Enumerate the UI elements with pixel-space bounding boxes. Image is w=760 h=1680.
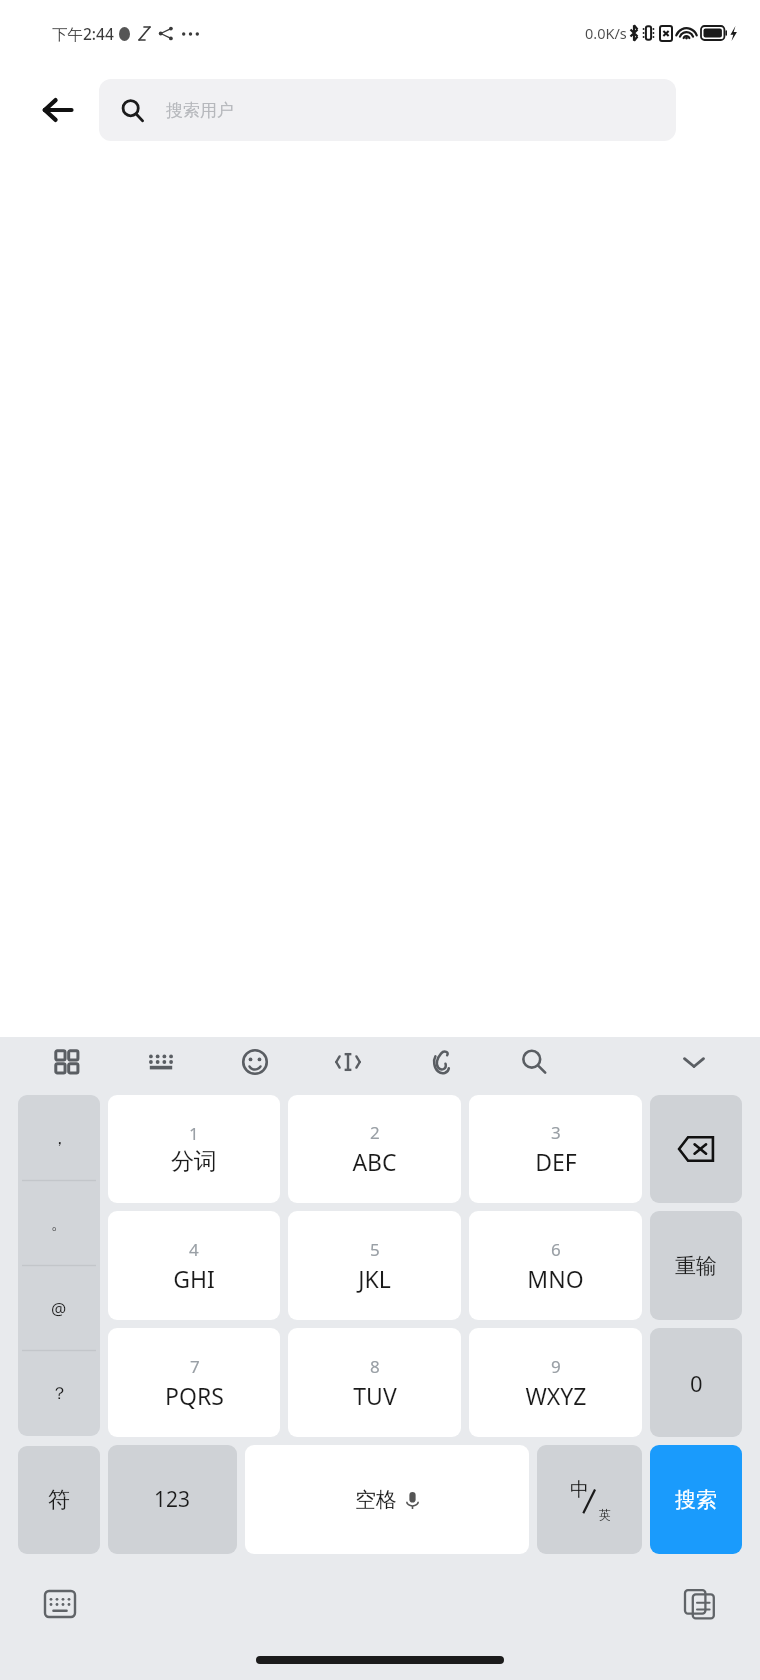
staticText: 中 (570, 1478, 589, 1502)
staticText: JKL (358, 1263, 391, 1294)
button[interactable]: Clipboard link (394, 1037, 487, 1087)
button[interactable]: 2 (288, 1095, 461, 1203)
button[interactable]: ？ (18, 1351, 100, 1436)
button[interactable]: Hide keyboard (647, 1037, 740, 1087)
button[interactable]: 6 (469, 1211, 642, 1320)
button[interactable]: Backspace (650, 1095, 742, 1203)
button[interactable]: Switch keyboard (32, 1576, 88, 1632)
staticText: 分词 (171, 1147, 217, 1176)
staticText: WXYZ (525, 1380, 587, 1411)
button[interactable]: 1 (108, 1095, 280, 1203)
staticText: 下午2:44 (52, 23, 114, 44)
button[interactable]: @ (18, 1266, 100, 1351)
staticText: 3 (551, 1121, 561, 1144)
button[interactable]: 4 (108, 1211, 280, 1320)
staticText: 搜索用户 (166, 100, 234, 121)
button[interactable]: Keyboard settings (114, 1037, 208, 1087)
staticText: 4 (189, 1238, 199, 1261)
button[interactable]: Back (22, 74, 94, 146)
button[interactable]: 重输 (650, 1211, 742, 1320)
staticText: ABC (352, 1146, 397, 1177)
staticText: @ (51, 1297, 67, 1320)
button[interactable]: 符 (18, 1446, 100, 1554)
button[interactable]: 3 (469, 1095, 642, 1203)
staticText: 2 (370, 1121, 380, 1144)
button[interactable]: 5 (288, 1211, 461, 1320)
staticText: 123 (154, 1485, 191, 1514)
button[interactable]: 0 (650, 1328, 742, 1437)
button[interactable]: 123 (108, 1445, 237, 1554)
staticText: 0.0K/s (585, 23, 627, 43)
staticText: 8 (370, 1355, 380, 1378)
staticText: 1 (189, 1122, 199, 1145)
staticText: 0 (690, 1368, 703, 1398)
staticText: 英 (599, 1507, 611, 1522)
button[interactable]: 。 (18, 1181, 100, 1266)
staticText: GHI (173, 1263, 215, 1294)
staticText: 空格 (355, 1487, 397, 1513)
staticText: 符 (48, 1486, 70, 1514)
staticText: 7 (190, 1355, 200, 1378)
button[interactable]: 空格 (245, 1445, 529, 1554)
button[interactable]: 中 (537, 1445, 642, 1554)
button[interactable]: ， (18, 1095, 100, 1181)
staticText: DEF (535, 1146, 577, 1177)
staticText: MNO (527, 1263, 584, 1294)
button[interactable]: Keyboard layouts (20, 1037, 114, 1087)
staticText: 6 (551, 1238, 561, 1261)
staticText: ， (51, 1128, 68, 1149)
staticText: PQRS (165, 1380, 224, 1411)
button[interactable]: Edit text (301, 1037, 394, 1087)
button[interactable]: 8 (288, 1328, 461, 1437)
staticText: 搜索 (675, 1487, 717, 1513)
button[interactable]: 搜索用户 (99, 79, 676, 141)
button[interactable]: Emoji (208, 1037, 301, 1087)
button[interactable]: 7 (108, 1328, 280, 1437)
button[interactable]: Clipboard (672, 1576, 728, 1632)
button[interactable]: 9 (469, 1328, 642, 1437)
button[interactable]: Search (487, 1037, 580, 1087)
staticText: 重输 (675, 1253, 717, 1279)
staticText: ？ (51, 1383, 68, 1404)
button[interactable]: 搜索 (650, 1445, 742, 1554)
staticText: TUV (353, 1380, 397, 1411)
staticText: 9 (551, 1355, 561, 1378)
staticText: 5 (370, 1238, 380, 1261)
staticText: 。 (51, 1213, 68, 1234)
